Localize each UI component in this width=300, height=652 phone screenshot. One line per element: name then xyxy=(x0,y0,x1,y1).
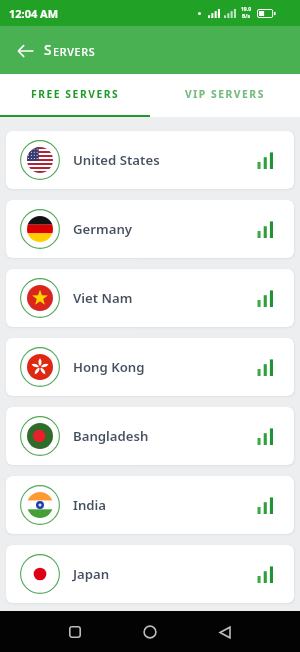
staticText: 12:04 AM xyxy=(9,6,59,21)
staticText: Hong Kong xyxy=(73,358,145,376)
button[interactable]: Bangladesh xyxy=(6,407,294,465)
staticText: S xyxy=(44,41,53,59)
button[interactable]: Recent apps xyxy=(55,612,95,652)
button[interactable]: Back xyxy=(7,32,44,69)
button[interactable]: FREE SERVERS xyxy=(0,74,150,117)
staticText: Viet Nam xyxy=(73,289,133,307)
staticText: Japan xyxy=(73,565,110,583)
button[interactable]: Back xyxy=(205,612,245,652)
staticText: United States xyxy=(73,151,160,169)
button[interactable]: Japan xyxy=(6,545,294,603)
staticText: ERVERS xyxy=(53,44,96,59)
staticText: VIP SERVERS xyxy=(185,87,265,101)
button[interactable]: Hong Kong xyxy=(6,338,294,396)
staticText: B/s xyxy=(242,13,250,20)
staticText: 19.0 xyxy=(241,6,251,13)
staticText: India xyxy=(73,496,106,514)
button[interactable]: United States xyxy=(6,131,294,189)
button[interactable]: Germany xyxy=(6,200,294,258)
button[interactable]: VIP SERVERS xyxy=(150,74,300,117)
staticText: Bangladesh xyxy=(73,427,149,445)
staticText: Germany xyxy=(73,220,133,238)
staticText: FREE SERVERS xyxy=(31,87,120,101)
button[interactable]: Home xyxy=(130,612,170,652)
button[interactable]: Viet Nam xyxy=(6,269,294,327)
button[interactable]: India xyxy=(6,476,294,534)
